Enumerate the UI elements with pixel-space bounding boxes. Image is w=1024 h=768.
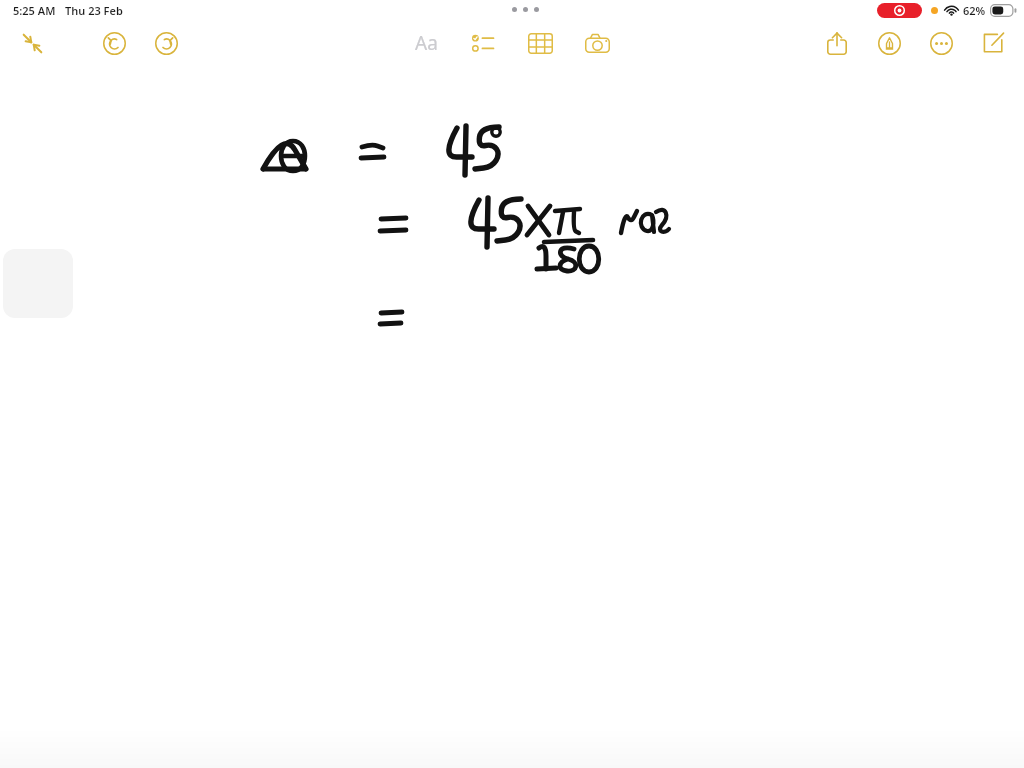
staticText: Aa bbox=[415, 30, 438, 56]
button[interactable]: Checklist bbox=[462, 21, 504, 65]
button[interactable]: Share bbox=[816, 21, 858, 65]
button[interactable]: New note bbox=[972, 21, 1014, 65]
button[interactable]: Collapse bbox=[11, 21, 53, 65]
button[interactable]: Table bbox=[519, 21, 561, 65]
button[interactable]: Undo bbox=[93, 21, 135, 65]
button[interactable]: Camera bbox=[576, 21, 618, 65]
button[interactable]: More options bbox=[920, 21, 962, 65]
staticText: 62% bbox=[963, 3, 986, 18]
button[interactable]: Redo bbox=[145, 21, 187, 65]
button[interactable]: Aa bbox=[405, 20, 447, 66]
button[interactable]: Markup bbox=[868, 21, 910, 65]
staticText: Thu 23 Feb bbox=[65, 3, 123, 18]
staticText: 5:25 AM bbox=[13, 3, 56, 18]
